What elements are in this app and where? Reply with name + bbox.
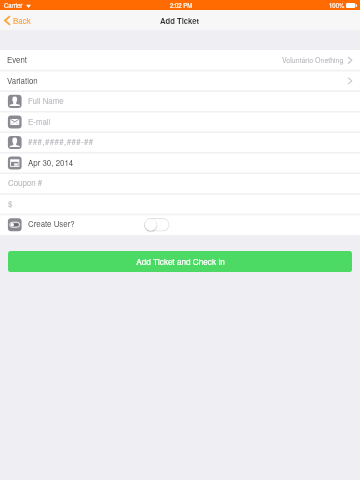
staticText: Full Name xyxy=(28,95,64,106)
button[interactable]: Variation xyxy=(0,71,360,92)
staticText: Create User? xyxy=(28,218,75,229)
staticText: Carrier xyxy=(4,1,23,10)
staticText: ###,####,###-## xyxy=(28,136,94,147)
button[interactable]: Event xyxy=(0,50,360,71)
staticText: Apr 30, 2014 xyxy=(28,157,74,168)
staticText: Add Ticket xyxy=(160,15,200,26)
button[interactable]: ###,####,###-## xyxy=(0,132,360,153)
button[interactable]: Add Ticket and Check in xyxy=(8,251,352,272)
staticText: Coupon # xyxy=(8,177,43,188)
button[interactable]: Full Name xyxy=(0,91,360,112)
button[interactable]: E-mail xyxy=(0,112,360,133)
button[interactable]: Coupon # xyxy=(0,173,360,194)
staticText: E-mail xyxy=(28,116,51,127)
staticText: Variation xyxy=(7,75,38,86)
staticText: Event xyxy=(7,54,28,65)
staticText: Voluntário Onething xyxy=(282,55,344,65)
staticText: $ xyxy=(8,198,13,209)
button[interactable]: Back xyxy=(0,12,37,29)
staticText: Back xyxy=(13,15,31,26)
button[interactable]: Apr 30, 2014 xyxy=(0,153,360,174)
button[interactable]: Create User toggle xyxy=(144,218,169,231)
staticText: 2:02 PM xyxy=(170,1,193,10)
button[interactable]: Create User? xyxy=(0,214,360,235)
staticText: 100% xyxy=(329,1,345,10)
button[interactable]: $ xyxy=(0,194,360,215)
staticText: Add Ticket and Check in xyxy=(136,256,225,268)
